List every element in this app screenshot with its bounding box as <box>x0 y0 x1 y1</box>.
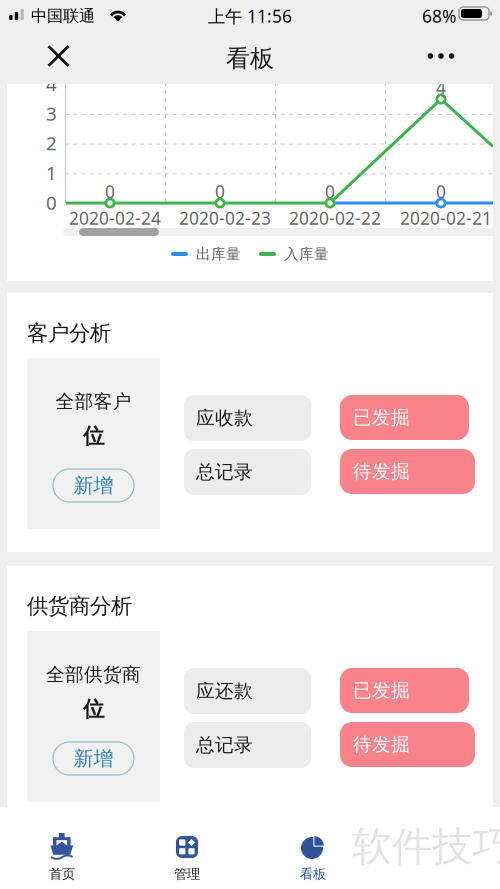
button[interactable]: 应收款 <box>184 395 311 441</box>
staticText: 4 <box>436 76 446 99</box>
staticText: 应收款 <box>196 406 253 429</box>
staticText: 待发掘 <box>353 733 410 756</box>
staticText: 位 <box>83 423 104 449</box>
staticText: 2020-02-24 <box>69 206 161 229</box>
staticText: 中国联通 <box>31 6 95 26</box>
staticText: 68% <box>422 4 456 27</box>
staticText: 4 <box>46 71 57 96</box>
staticText: 看板 <box>226 44 274 73</box>
staticText: 0 <box>46 190 57 215</box>
staticText: 待发掘 <box>353 460 410 483</box>
button[interactable]: 看板 <box>258 810 368 874</box>
button[interactable]: 管理 <box>132 810 242 874</box>
staticText: 0 <box>105 180 115 203</box>
button[interactable]: More options <box>419 34 463 78</box>
staticText: 出库量 <box>196 245 241 263</box>
staticText: 客户分析 <box>27 320 111 346</box>
staticText: 2 <box>46 131 57 155</box>
staticText: 新增 <box>73 746 113 771</box>
button[interactable]: 应还款 <box>184 668 311 714</box>
staticText: 已发掘 <box>353 406 410 429</box>
staticText: 上午 11:56 <box>208 4 292 27</box>
staticText: 2020-02-21 <box>400 206 492 229</box>
button[interactable]: 新增 <box>53 742 134 775</box>
staticText: 新增 <box>73 473 113 498</box>
staticText: 1 <box>46 160 57 185</box>
button[interactable]: 已发掘 <box>340 668 469 713</box>
staticText: 应还款 <box>196 679 253 702</box>
staticText: 已发掘 <box>353 679 410 702</box>
button[interactable]: 总记录 <box>184 722 311 768</box>
staticText: 全部客户 <box>55 390 131 413</box>
button[interactable]: 总记录 <box>184 449 311 495</box>
button[interactable]: 待发掘 <box>340 722 475 767</box>
button[interactable]: 新增 <box>53 469 134 502</box>
staticText: 2020-02-23 <box>179 206 271 229</box>
staticText: 首页 <box>49 866 75 882</box>
staticText: 总记录 <box>196 460 253 483</box>
button[interactable]: 待发掘 <box>340 449 475 494</box>
staticText: 入库量 <box>284 245 329 263</box>
staticText: 总记录 <box>196 733 253 756</box>
staticText: 软件技巧 <box>352 822 500 871</box>
staticText: 供货商分析 <box>27 593 132 619</box>
staticText: 0 <box>215 180 225 203</box>
staticText: 位 <box>83 696 104 722</box>
staticText: 2020-02-22 <box>289 206 381 229</box>
staticText: 0 <box>325 180 335 203</box>
staticText: 3 <box>46 101 57 126</box>
button[interactable]: 已发掘 <box>340 395 469 440</box>
staticText: 全部供货商 <box>46 663 141 686</box>
staticText: 0 <box>436 180 446 203</box>
staticText: 管理 <box>174 866 200 882</box>
staticText: 看板 <box>300 866 326 882</box>
button[interactable]: Close <box>36 34 80 78</box>
button[interactable]: 首页 <box>7 810 117 874</box>
